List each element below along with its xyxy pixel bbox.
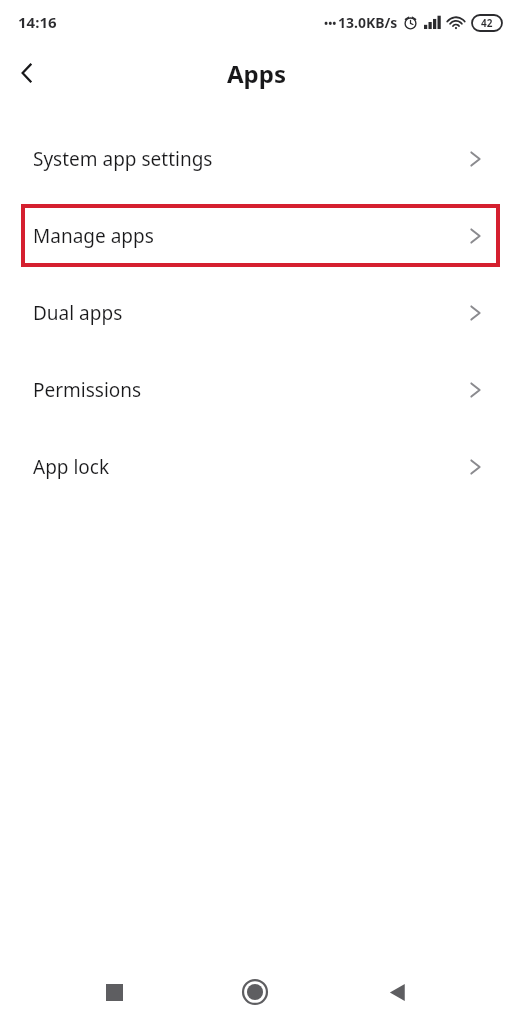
staticText: ••• bbox=[324, 15, 337, 30]
staticText: System app settings bbox=[33, 146, 213, 172]
staticText: Manage apps bbox=[33, 223, 154, 249]
button[interactable]: Recent apps bbox=[87, 965, 141, 1019]
staticText: Dual apps bbox=[33, 300, 123, 326]
button[interactable]: App lock bbox=[0, 428, 512, 505]
button[interactable]: Dual apps bbox=[0, 274, 512, 351]
staticText: Apps bbox=[227, 57, 286, 90]
staticText: 13.0KB/s bbox=[338, 13, 398, 32]
staticText: App lock bbox=[33, 454, 110, 480]
button[interactable]: Home bbox=[228, 965, 282, 1019]
button[interactable]: Back bbox=[370, 965, 424, 1019]
button[interactable]: System app settings bbox=[0, 120, 512, 197]
button[interactable]: Back bbox=[0, 46, 54, 100]
staticText: 14:16 bbox=[18, 12, 57, 32]
staticText: 42 bbox=[481, 16, 493, 30]
staticText: Permissions bbox=[33, 377, 142, 403]
button[interactable]: Manage apps bbox=[0, 197, 512, 274]
button[interactable]: Permissions bbox=[0, 351, 512, 428]
